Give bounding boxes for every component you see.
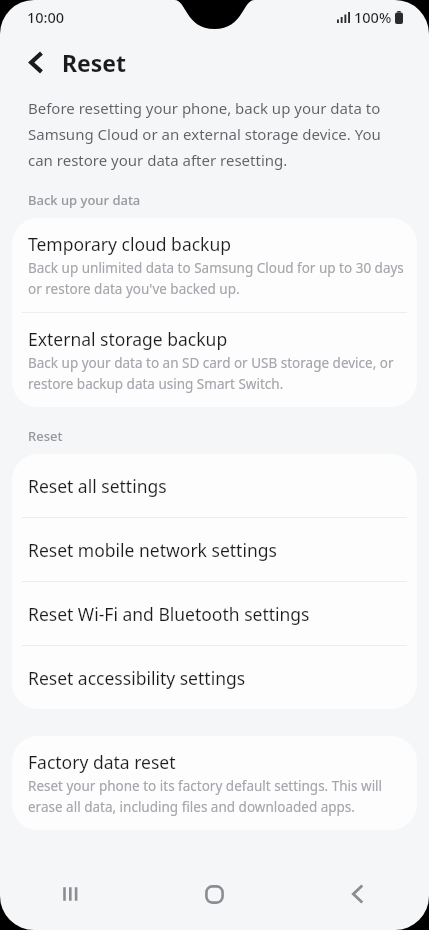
- button[interactable]: External storage backup: [12, 313, 417, 407]
- button[interactable]: Home: [143, 858, 286, 930]
- staticText: Reset: [28, 427, 63, 445]
- button[interactable]: Factory data reset: [12, 736, 417, 830]
- button[interactable]: Recents: [0, 858, 143, 930]
- button[interactable]: Temporary cloud backup: [12, 218, 417, 312]
- staticText: Reset your phone to its factory default …: [28, 777, 404, 816]
- staticText: Reset Wi-Fi and Bluetooth settings: [28, 602, 310, 626]
- button[interactable]: Back: [14, 40, 58, 84]
- staticText: 10:00: [27, 7, 65, 27]
- staticText: External storage backup: [28, 327, 228, 351]
- button[interactable]: Reset accessibility settings: [12, 646, 417, 709]
- button[interactable]: Reset all settings: [12, 454, 417, 517]
- staticText: Before resetting your phone, back up you…: [28, 98, 399, 171]
- staticText: Back up your data: [28, 191, 141, 209]
- staticText: Reset all settings: [28, 474, 167, 498]
- staticText: Back up your data to an SD card or USB s…: [28, 354, 404, 393]
- staticText: Reset mobile network settings: [28, 538, 277, 562]
- staticText: 100%: [354, 7, 392, 27]
- staticText: Back up unlimited data to Samsung Cloud …: [28, 259, 404, 298]
- staticText: Reset: [62, 47, 127, 78]
- button[interactable]: Reset Wi-Fi and Bluetooth settings: [12, 582, 417, 645]
- staticText: Factory data reset: [28, 750, 176, 774]
- staticText: Temporary cloud backup: [28, 232, 232, 256]
- button[interactable]: Reset mobile network settings: [12, 518, 417, 581]
- staticText: Reset accessibility settings: [28, 666, 246, 690]
- button[interactable]: Back: [286, 858, 429, 930]
